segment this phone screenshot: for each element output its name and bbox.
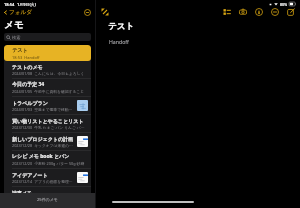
staticText: Handoff [109, 38, 129, 45]
staticText: 25件のメモ [37, 197, 58, 202]
staticText: テスト [12, 47, 28, 54]
button[interactable]: アイデアノート [4, 169, 91, 187]
button[interactable]: Expand [100, 7, 110, 17]
button[interactable]: New note [286, 7, 296, 17]
staticText: フォルダ [9, 9, 32, 16]
button[interactable]: Markup [254, 7, 264, 17]
staticText: 検索 [12, 35, 21, 40]
staticText: 読書メモ [12, 190, 33, 196]
staticText: アイデアノート [12, 172, 48, 178]
button[interactable]: 読書メモ [4, 187, 91, 205]
staticText: テスト [108, 21, 135, 32]
staticText: メモ [4, 19, 24, 31]
button[interactable]: More [270, 7, 280, 17]
staticText: 80% [280, 2, 288, 7]
staticText: 今日の予定 34 [12, 81, 45, 88]
button[interactable]: フォルダ [3, 9, 32, 16]
staticText: 18:54 [4, 2, 15, 7]
staticText: 2024/01/05 午前中に資料を確認すること [12, 89, 85, 94]
button[interactable]: 新しいプロジェクトの計画 [4, 133, 91, 151]
button[interactable]: 検索 [4, 33, 91, 41]
button[interactable]: Camera [238, 7, 248, 17]
staticText: 2023/12/02 第3章まで読んだ [12, 197, 64, 202]
staticText: 2024/01/03 空港まで電車で移動する予定 [12, 107, 75, 112]
button[interactable]: 今日の予定 34 [4, 79, 91, 97]
staticText: 買い物リストとやることリスト [12, 118, 84, 124]
staticText: 1月9日(火) [17, 2, 37, 7]
button[interactable]: テストのメモ [4, 61, 91, 79]
staticText: テストのメモ [12, 64, 43, 70]
button[interactable]: 買い物リストとやることリスト [4, 115, 91, 133]
staticText: 2024/01/08 こんにちは、今日もよろしく [12, 71, 85, 76]
button[interactable]: テスト [4, 45, 91, 61]
button[interactable]: Format [222, 7, 232, 17]
button[interactable]: More options [83, 8, 92, 17]
staticText: 新しいプロジェクトの計画 [12, 136, 74, 142]
staticText: 18:53 Handoff [12, 55, 40, 60]
staticText: 2023/12/20 小麦粉 200g バター 50g 砂糖 [12, 161, 85, 166]
button[interactable]: トラベルプラン [4, 97, 91, 115]
staticText: トラベルプラン [12, 100, 48, 106]
staticText: 2023/12/28 キックオフは来週の月曜日 [12, 143, 75, 148]
staticText: 2023/12/14 アプリの画面を整理しておく [12, 179, 75, 184]
staticText: レシピ メモ book とパン [12, 153, 70, 160]
button[interactable]: レシピ メモ book とパン [4, 151, 91, 169]
staticText: 2023/12/30 牛乳 たまご パン りんご バナナ [12, 125, 88, 130]
